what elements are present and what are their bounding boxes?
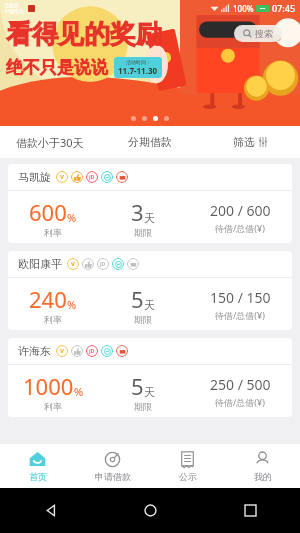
staticText: 马凯旋	[18, 170, 51, 184]
button[interactable]: 马凯旋	[8, 164, 292, 243]
staticText: JD	[89, 348, 95, 355]
staticText: 无服务	[4, 2, 19, 8]
staticText: 5	[131, 371, 144, 401]
button[interactable]: 我的	[225, 444, 300, 488]
staticText: 利率	[44, 401, 62, 412]
staticText: %	[67, 210, 77, 225]
staticText: 200 / 600	[210, 201, 271, 220]
other: badge	[112, 258, 124, 270]
other: badge	[97, 258, 109, 270]
staticText: 250 / 500	[210, 375, 271, 394]
other: badge	[71, 171, 83, 183]
staticText: 绝不只是说说	[6, 57, 108, 78]
button[interactable]: 公示	[150, 444, 225, 488]
staticText: 活动时间：	[126, 59, 151, 65]
staticText: 期限	[134, 227, 152, 238]
other: badge	[101, 345, 113, 357]
other: badge	[56, 345, 68, 357]
staticText: 许海东	[18, 344, 51, 358]
staticText: V	[71, 260, 75, 268]
button[interactable]: 借款小于30天	[0, 126, 100, 158]
staticText: 待借/总借(¥)	[215, 396, 265, 408]
staticText: 240	[29, 284, 67, 314]
staticText: 我的	[254, 471, 272, 482]
other: badge	[127, 258, 139, 270]
staticText: JD	[100, 261, 106, 268]
other: badge	[86, 345, 98, 357]
button[interactable]: 申请借款	[75, 444, 150, 488]
staticText: 天	[144, 385, 155, 399]
staticText: 11.7-11.30	[118, 65, 158, 76]
other: badge	[116, 171, 128, 183]
staticText: 07:45	[272, 2, 296, 14]
staticText: 欧阳康平	[18, 257, 62, 271]
staticText: 利率	[44, 314, 62, 325]
staticText: 借款小于30天	[16, 135, 84, 150]
staticText: %	[74, 384, 84, 399]
button[interactable]: 分期借款	[100, 126, 200, 158]
other: badge	[101, 171, 113, 183]
staticText: 期限	[134, 314, 152, 325]
other: badge	[56, 171, 68, 183]
staticText: %	[67, 297, 77, 312]
button[interactable]: 首页	[0, 444, 75, 488]
staticText: 申请借款	[95, 471, 131, 482]
staticText: 公示	[179, 471, 197, 482]
button[interactable]: 许海东	[8, 338, 292, 417]
staticText: 利率	[44, 227, 62, 238]
staticText: 待借/总借(¥)	[215, 222, 265, 234]
staticText: 筛选	[233, 135, 255, 149]
other: badge	[82, 258, 94, 270]
button[interactable]: 筛选	[200, 126, 300, 158]
other: badge	[71, 345, 83, 357]
staticText: JD	[89, 174, 95, 181]
staticText: 600	[29, 197, 67, 227]
staticText: 天	[144, 211, 155, 225]
staticText: 搜索	[255, 28, 273, 39]
staticText: 天	[144, 298, 155, 312]
staticText: 3	[131, 197, 144, 227]
staticText: 期限	[134, 401, 152, 412]
other: badge	[86, 171, 98, 183]
other: badge	[67, 258, 79, 270]
button[interactable]: 搜索	[234, 25, 282, 42]
staticText: 首页	[29, 471, 47, 482]
button[interactable]: 欧阳康平	[8, 251, 292, 330]
staticText: 5	[131, 284, 144, 314]
staticText: 看得见的奖励	[6, 18, 162, 51]
staticText: 100%	[233, 3, 254, 14]
staticText: V	[60, 347, 64, 355]
staticText: 待借/总借(¥)	[215, 309, 265, 321]
other: badge	[116, 345, 128, 357]
staticText: 1000	[23, 371, 74, 401]
staticText: 中国电信	[4, 8, 24, 14]
staticText: V	[60, 173, 64, 181]
staticText: 150 / 150	[210, 288, 271, 307]
staticText: 分期借款	[128, 135, 172, 149]
